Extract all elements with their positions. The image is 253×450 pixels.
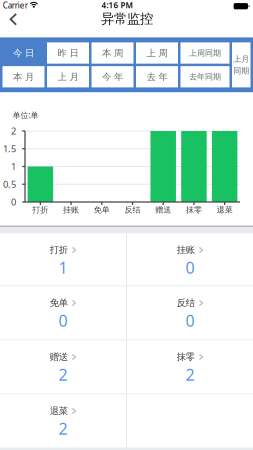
staticText: 上周同期 xyxy=(189,48,221,58)
button[interactable]: 赠送 xyxy=(0,340,126,393)
staticText: 单位:单 xyxy=(12,110,38,120)
button[interactable]: 去 年 xyxy=(136,66,178,87)
staticText: 赠送 xyxy=(50,351,68,363)
button[interactable]: 去年同期 xyxy=(180,66,229,87)
button[interactable]: 上周同期 xyxy=(180,42,229,64)
staticText: 上 月 xyxy=(57,71,78,82)
button[interactable]: 抹零 xyxy=(127,340,253,393)
button[interactable]: 退菜 xyxy=(0,394,126,447)
staticText: 1.5 xyxy=(3,143,16,155)
button[interactable]: 本 月 xyxy=(2,66,44,87)
staticText: 0.5 xyxy=(3,178,16,190)
button[interactable]: 今 日 xyxy=(2,42,44,64)
staticText: 2 xyxy=(11,125,16,137)
staticText: 今 年 xyxy=(102,71,123,82)
staticText: 同期 xyxy=(233,66,249,76)
staticText: 去 年 xyxy=(146,71,167,82)
staticText: 2 xyxy=(58,418,67,439)
button[interactable]: 今 年 xyxy=(91,66,133,87)
staticText: 异常监控 xyxy=(101,10,153,27)
button[interactable]: 反结 xyxy=(127,286,253,339)
button[interactable]: 上 月 xyxy=(47,66,89,87)
staticText: 本 月 xyxy=(13,71,34,82)
staticText: 今 日 xyxy=(13,47,34,59)
staticText: 2 xyxy=(58,364,67,385)
staticText: 去年同期 xyxy=(189,72,221,82)
button[interactable]: Back xyxy=(2,5,25,34)
staticText: 0 xyxy=(58,310,67,331)
staticText: 挂账 xyxy=(63,205,79,215)
staticText: 昨 日 xyxy=(57,47,78,59)
button[interactable]: 打折 xyxy=(0,233,126,285)
staticText: 免单 xyxy=(50,297,68,309)
button[interactable]: 免单 xyxy=(0,286,126,339)
staticText: 本 周 xyxy=(102,47,123,59)
staticText: 抹零 xyxy=(186,205,202,215)
button[interactable]: 上 周 xyxy=(136,42,178,64)
staticText: 4:16 PM xyxy=(101,0,132,10)
staticText: 退菜 xyxy=(50,405,68,417)
staticText: 赠送 xyxy=(155,205,171,215)
button[interactable]: 本 周 xyxy=(91,42,133,64)
staticText: 0 xyxy=(11,196,16,208)
staticText: 0 xyxy=(185,257,194,278)
staticText: 免单 xyxy=(94,205,110,215)
staticText: 抹零 xyxy=(177,351,195,363)
staticText: 退菜 xyxy=(217,205,233,215)
button[interactable]: 上月 xyxy=(232,42,250,87)
staticText: 上月 xyxy=(233,54,249,64)
staticText: 打折 xyxy=(32,205,48,215)
staticText: 反结 xyxy=(177,297,195,309)
staticText: 上 周 xyxy=(146,47,167,59)
staticText: 反结 xyxy=(124,205,140,215)
staticText: 打折 xyxy=(50,244,68,256)
staticText: Carrier xyxy=(3,0,28,11)
staticText: 挂账 xyxy=(177,244,195,256)
button[interactable]: 挂账 xyxy=(127,233,253,285)
staticText: 2 xyxy=(185,364,194,385)
staticText: 1 xyxy=(58,257,67,278)
staticText: 0 xyxy=(185,310,194,331)
button[interactable]: 昨 日 xyxy=(47,42,89,64)
staticText: 1 xyxy=(11,160,16,173)
